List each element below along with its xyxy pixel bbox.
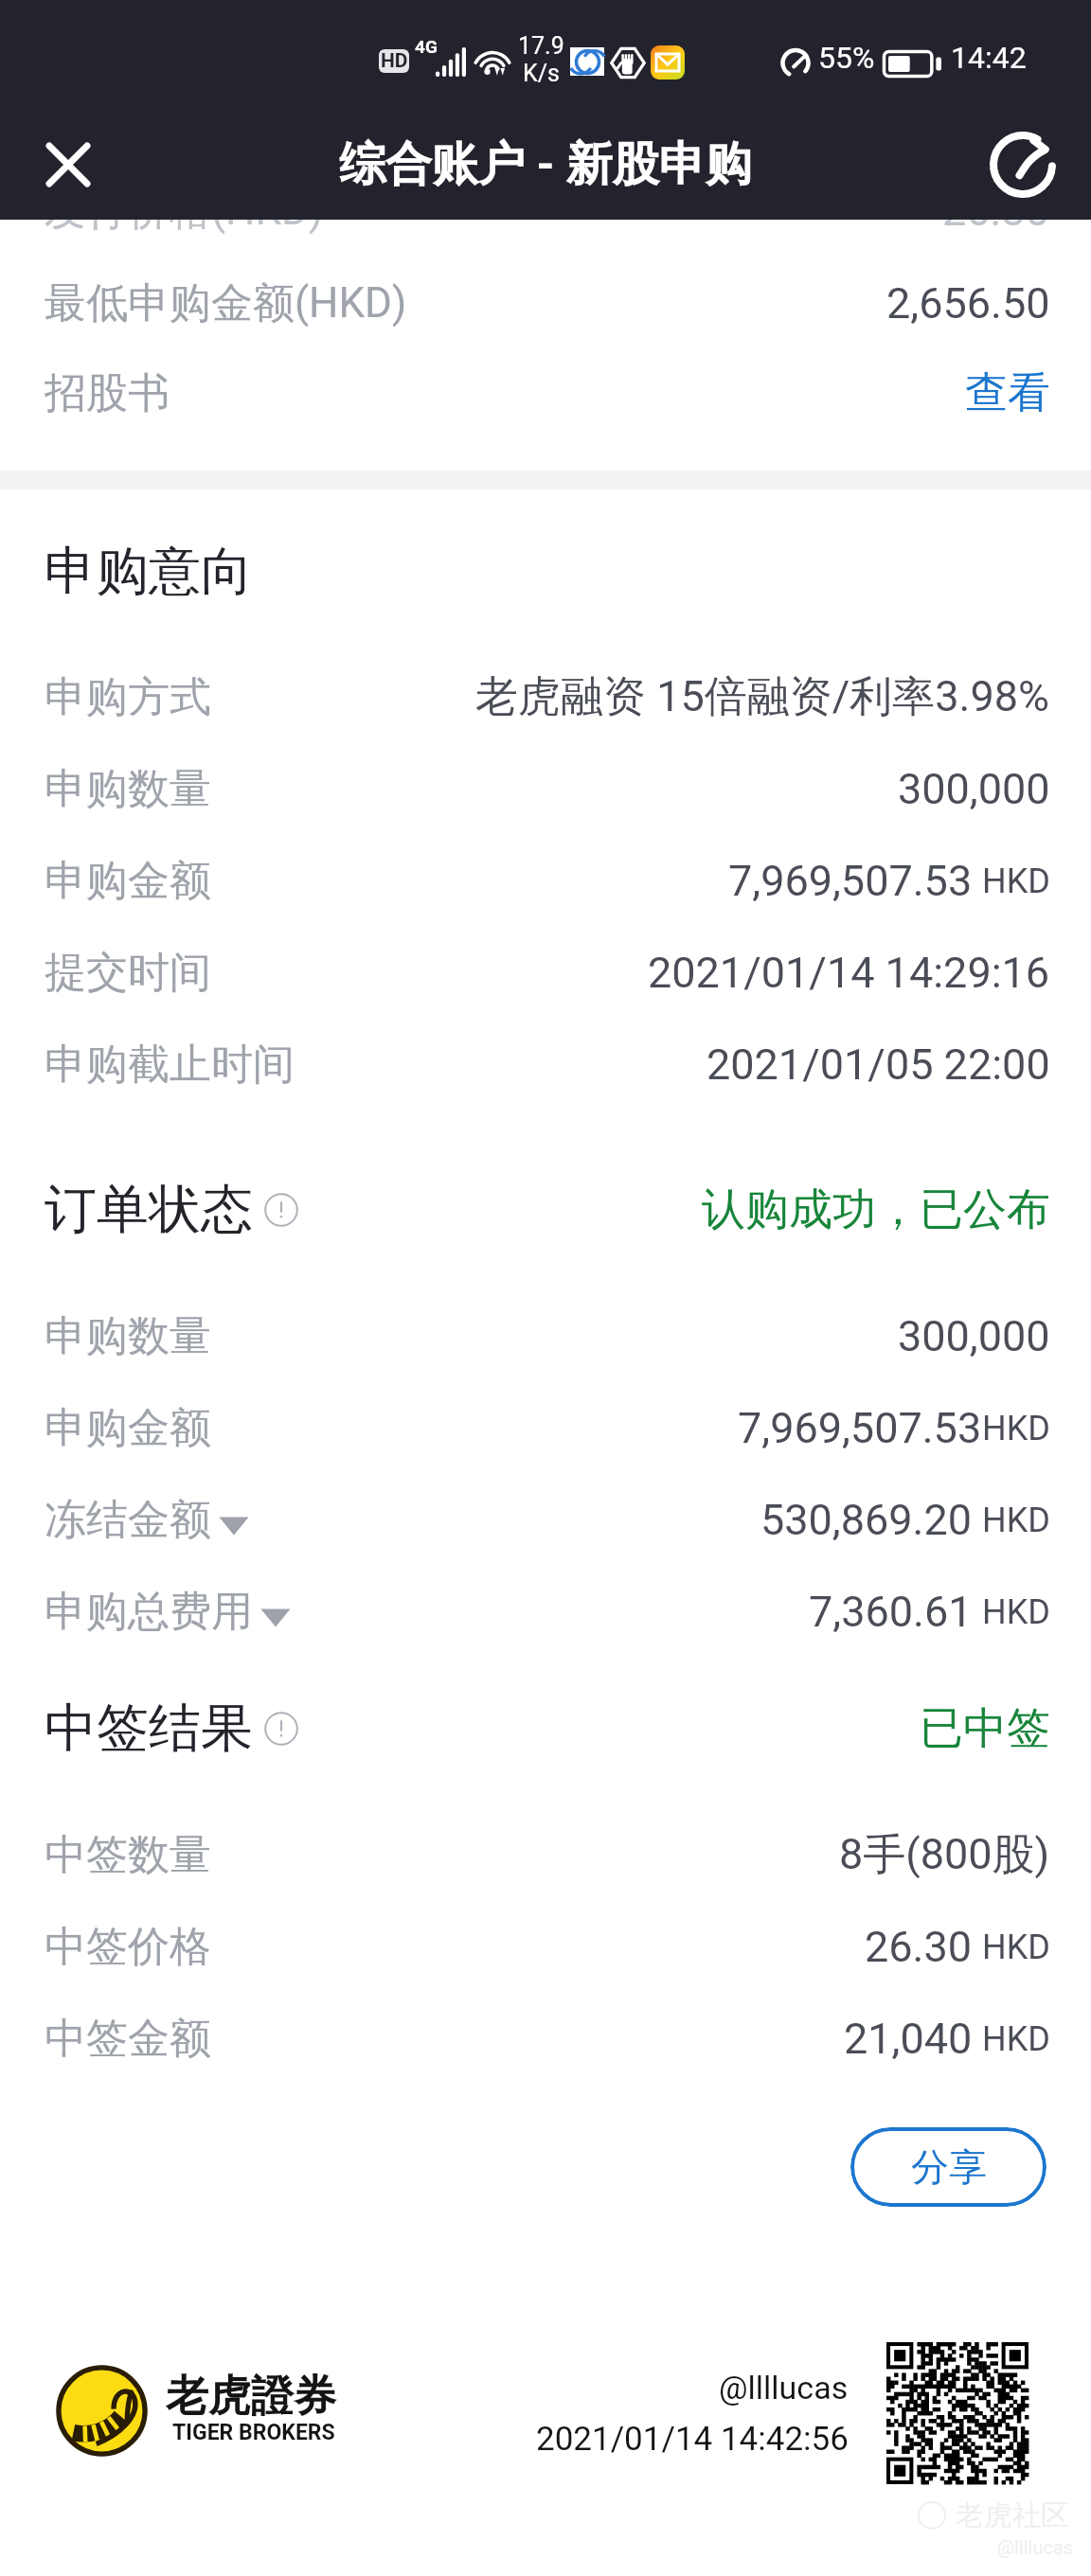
button[interactable]: 提交时间 bbox=[0, 928, 1091, 1018]
staticText: 7,969,507.53 bbox=[738, 1403, 982, 1453]
staticText: 14:42 bbox=[951, 40, 1027, 76]
staticText: 300,000 bbox=[898, 764, 1050, 814]
staticText: HD bbox=[381, 49, 408, 73]
staticText: 300,000 bbox=[898, 1311, 1050, 1361]
staticText: 老虎融资 15倍融资/利率3.98% bbox=[475, 670, 1050, 724]
button[interactable]: Refresh bbox=[971, 113, 1075, 217]
staticText: 530,869.20 bbox=[760, 1495, 973, 1545]
staticText: 提交时间 bbox=[45, 947, 211, 999]
staticText: 中签金额 bbox=[45, 2013, 211, 2065]
staticText: 2021/01/14 14:29:16 bbox=[648, 948, 1050, 998]
staticText: K/s bbox=[523, 60, 560, 87]
button[interactable]: 申购总费用 bbox=[0, 1567, 1091, 1657]
staticText: 申购总费用 bbox=[45, 1586, 253, 1638]
staticText: 综合账户 - 新股申购 bbox=[339, 135, 752, 194]
staticText: HKD bbox=[982, 1592, 1050, 1632]
staticText: 老虎社区 bbox=[956, 2497, 1069, 2533]
staticText: 申购金额 bbox=[45, 1402, 211, 1454]
staticText: 老虎證券 bbox=[166, 2370, 336, 2424]
staticText: @llllucas bbox=[997, 2536, 1074, 2558]
staticText: 17.9 bbox=[518, 32, 564, 60]
staticText: 已中签 bbox=[920, 1701, 1050, 1756]
staticText: 8手(800股) bbox=[839, 1828, 1050, 1882]
staticText: 认购成功，已公布 bbox=[702, 1182, 1050, 1237]
staticText: 招股书 bbox=[45, 367, 170, 419]
staticText: 申购方式 bbox=[45, 671, 211, 723]
staticText: 2021/01/14 14:42:56 bbox=[536, 2420, 849, 2459]
staticText: 申购数量 bbox=[45, 763, 211, 815]
staticText: 55% bbox=[818, 40, 875, 76]
staticText: 申购截止时间 bbox=[45, 1039, 295, 1091]
button[interactable]: Close bbox=[16, 113, 120, 217]
staticText: 26.30 bbox=[942, 186, 1050, 236]
staticText: 发行价格(HKD) bbox=[45, 185, 324, 237]
staticText: 冻结金额 bbox=[45, 1494, 211, 1546]
staticText: HKD bbox=[982, 862, 1050, 901]
staticText: HKD bbox=[982, 2019, 1050, 2059]
staticText: 26.30 bbox=[865, 1922, 973, 1972]
button[interactable]: 申购截止时间 bbox=[0, 1020, 1091, 1110]
staticText: 查看 bbox=[965, 366, 1050, 420]
staticText: TIGER BROKERS bbox=[172, 2420, 335, 2445]
staticText: 中签结果 bbox=[45, 1696, 253, 1761]
button[interactable]: More info bbox=[264, 1193, 298, 1227]
staticText: 分享 bbox=[911, 2143, 987, 2191]
button[interactable]: 申购金额 bbox=[0, 836, 1091, 926]
staticText: @llllucas bbox=[719, 2369, 849, 2407]
staticText: 2,656.50 bbox=[886, 278, 1050, 329]
staticText: 申购意向 bbox=[45, 539, 253, 604]
button[interactable]: 申购数量 bbox=[0, 744, 1091, 834]
staticText: 21,040 bbox=[844, 2014, 973, 2064]
button[interactable]: 中签数量 bbox=[0, 1810, 1091, 1900]
staticText: 订单状态 bbox=[45, 1177, 253, 1242]
button[interactable]: More info bbox=[264, 1712, 298, 1746]
staticText: 申购金额 bbox=[45, 855, 211, 907]
button[interactable]: 中签金额 bbox=[0, 1994, 1091, 2084]
button[interactable]: 中签价格 bbox=[0, 1902, 1091, 1992]
button[interactable]: 申购方式 bbox=[0, 652, 1091, 742]
staticText: 中签价格 bbox=[45, 1921, 211, 1973]
staticText: HKD bbox=[982, 1928, 1050, 1967]
button[interactable]: 分享 bbox=[850, 2127, 1046, 2207]
staticText: 中签数量 bbox=[45, 1829, 211, 1881]
button[interactable]: 冻结金额 bbox=[0, 1475, 1091, 1565]
staticText: 7,969,507.53 bbox=[728, 856, 973, 906]
staticText: 4G bbox=[415, 36, 438, 57]
staticText: HKD bbox=[982, 1409, 1050, 1448]
staticText: 7,360.61 bbox=[809, 1587, 973, 1637]
button[interactable]: 申购金额 bbox=[0, 1383, 1091, 1473]
staticText: 申购数量 bbox=[45, 1310, 211, 1362]
button[interactable]: 最低申购金额(HKD) bbox=[0, 258, 1091, 348]
button[interactable]: 招股书 bbox=[45, 348, 1050, 438]
staticText: 2021/01/05 22:00 bbox=[706, 1039, 1050, 1090]
button[interactable]: 申购数量 bbox=[0, 1291, 1091, 1381]
staticText: 最低申购金额(HKD) bbox=[45, 277, 407, 329]
staticText: HKD bbox=[982, 1501, 1050, 1540]
